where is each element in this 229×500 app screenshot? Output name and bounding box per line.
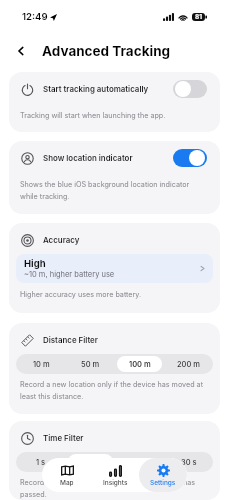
button[interactable]: 10 m xyxy=(18,356,64,372)
staticText: Record a new location only if the device… xyxy=(20,380,203,400)
staticText: 81 xyxy=(195,13,203,21)
staticText: Tracking will start when launching the a… xyxy=(20,111,166,120)
staticText: Distance Filter xyxy=(43,335,98,345)
staticText: Advanced Tracking xyxy=(42,43,171,59)
button[interactable]: Toggle off xyxy=(173,80,207,98)
staticText: Accuracy xyxy=(43,235,80,245)
button[interactable]: Back xyxy=(12,42,30,60)
button[interactable]: 1 s xyxy=(18,454,64,470)
staticText: 50 m xyxy=(81,360,100,369)
button[interactable]: Insights xyxy=(91,458,139,492)
button[interactable]: High xyxy=(16,254,213,283)
staticText: Start tracking automatically xyxy=(43,84,149,94)
staticText: 10 m xyxy=(33,360,50,369)
staticText: Shows the blue iOS background location i… xyxy=(20,180,190,200)
staticText: Show location indicator xyxy=(43,153,133,163)
staticText: Insights xyxy=(103,479,128,487)
button[interactable]: 30 s xyxy=(166,454,211,470)
staticText: 30 s xyxy=(181,458,197,467)
staticText: 200 m xyxy=(177,360,200,369)
staticText: Record a new location only after this mu… xyxy=(20,478,196,498)
button[interactable]: 50 m xyxy=(68,356,113,372)
staticText: Higher accuracy uses more battery. xyxy=(20,290,142,299)
button[interactable]: Toggle on xyxy=(173,149,207,167)
staticText: 10 s xyxy=(133,458,147,467)
button[interactable]: 5 s xyxy=(68,454,113,470)
button[interactable]: 100 m xyxy=(117,356,162,372)
button[interactable]: 10 s xyxy=(117,454,162,470)
staticText: Map xyxy=(60,479,74,487)
staticText: 1 s xyxy=(36,458,46,467)
staticText: Settings xyxy=(150,479,176,487)
staticText: ~10 m, higher battery use xyxy=(24,270,115,279)
button[interactable]: Settings xyxy=(139,458,187,492)
button[interactable]: 200 m xyxy=(166,356,211,372)
staticText: Time Filter xyxy=(43,433,84,443)
button[interactable]: Map xyxy=(42,458,91,492)
staticText: 12:49 xyxy=(22,11,48,23)
staticText: High xyxy=(24,258,46,269)
staticText: 100 m xyxy=(129,360,151,369)
